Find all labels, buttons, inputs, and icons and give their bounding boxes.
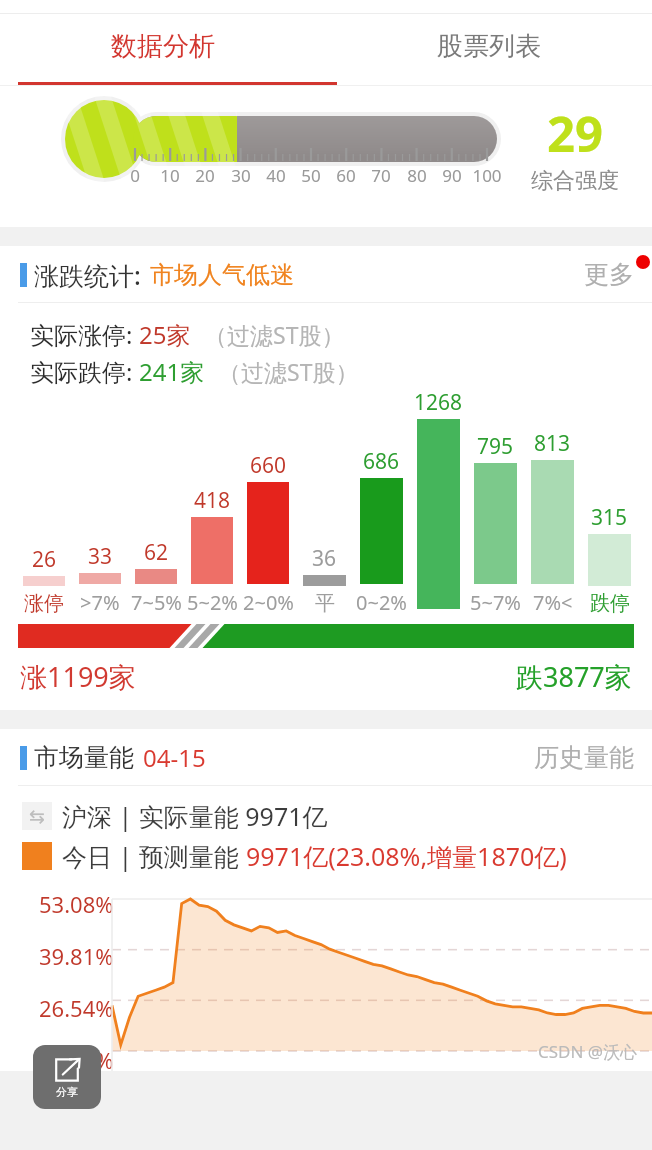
button[interactable]: 历史量能 (534, 742, 634, 773)
staticText: 7~5% (131, 589, 182, 616)
staticText: 813 (534, 429, 571, 458)
staticText: 40 (266, 164, 286, 187)
staticText: 分享 (56, 1085, 78, 1099)
staticText: 今日 | 预测量能 (62, 839, 246, 873)
staticText: 90 (442, 164, 462, 187)
staticText: 涨停 (24, 591, 64, 616)
staticText: 涨1199家 (20, 658, 136, 695)
staticText: 39.81% (39, 941, 114, 971)
staticText: 跌停 (590, 591, 630, 616)
staticText: 0~2% (356, 589, 407, 616)
staticText: 795 (477, 432, 514, 461)
staticText: （过滤ST股） (218, 356, 359, 387)
staticText: 04-15 (143, 741, 206, 774)
staticText: 10 (160, 164, 180, 187)
staticText: （过滤ST股） (204, 319, 345, 350)
button[interactable]: 数据分析 (0, 18, 326, 74)
staticText: 660 (250, 451, 287, 480)
staticText: 平 (315, 591, 335, 616)
staticText: 2~0% (243, 589, 294, 616)
staticText: 更多 (584, 259, 634, 290)
staticText: 62 (144, 538, 169, 567)
button[interactable]: 股票列表 (326, 18, 652, 74)
staticText: 60 (336, 164, 356, 187)
staticText: 26 (32, 545, 57, 574)
button[interactable]: 分享 (33, 1045, 101, 1109)
button[interactable]: 更多 (584, 259, 634, 290)
staticText: 市场人气低迷 (150, 260, 294, 290)
staticText: 1268 (414, 388, 463, 417)
staticText: 26.54% (39, 993, 114, 1023)
staticText: 33 (88, 542, 113, 571)
staticText: 20 (195, 164, 215, 187)
staticText: 36 (312, 544, 337, 573)
staticText: 0 (130, 164, 140, 187)
staticText: 实际涨停: (30, 318, 139, 351)
staticText: 686 (363, 447, 400, 476)
staticText: 100 (472, 164, 502, 187)
staticText: >7% (80, 589, 120, 616)
staticText: ⇆ (29, 805, 45, 827)
staticText: 50 (301, 164, 321, 187)
staticText: 跌3877家 (516, 658, 632, 695)
staticText: 25家 (139, 318, 191, 351)
staticText: 53.08% (39, 889, 114, 919)
staticText: 涨跌统计: (34, 258, 141, 292)
staticText: 80 (407, 164, 427, 187)
staticText: 市场量能 (34, 742, 134, 773)
staticText: CSDN @沃心 (538, 1040, 638, 1063)
staticText: 13.27% (39, 1045, 114, 1075)
staticText: 沪深 | 实际量能 9971亿 (62, 799, 328, 833)
staticText: 5~2% (187, 589, 238, 616)
staticText: 29 (547, 100, 604, 167)
staticText: 数据分析 (111, 30, 215, 63)
staticText: 历史量能 (534, 742, 634, 773)
staticText: 5~7% (470, 589, 521, 616)
staticText: 实际跌停: (30, 355, 139, 388)
staticText: 股票列表 (437, 30, 541, 63)
staticText: 241家 (139, 355, 205, 388)
staticText: 70 (371, 164, 391, 187)
staticText: 综合强度 (531, 167, 619, 195)
staticText: 7%< (533, 589, 573, 616)
staticText: 315 (591, 503, 628, 532)
staticText: 30 (231, 164, 251, 187)
staticText: 418 (194, 486, 231, 515)
staticText: 9971亿(23.08%,增量1870亿) (246, 839, 567, 873)
